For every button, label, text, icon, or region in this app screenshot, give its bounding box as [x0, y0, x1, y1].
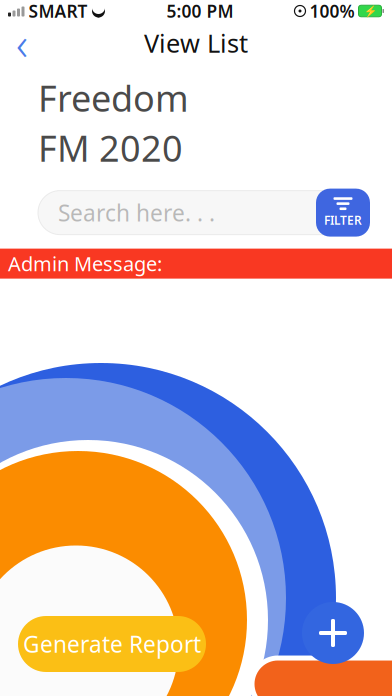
staticText: ‹ [16, 13, 28, 73]
staticText: 5:00 PM [166, 0, 233, 22]
staticText: Search here. . . [58, 198, 215, 228]
staticText: FM 2020 [38, 124, 183, 172]
staticText: ⚡ [363, 5, 376, 17]
button[interactable]: Add [302, 602, 364, 664]
staticText: View List [144, 26, 248, 60]
button[interactable]: Generate Report [18, 616, 206, 672]
staticText: 100% [309, 0, 354, 22]
staticText: SMART [28, 0, 87, 22]
staticText: Admin Message: [8, 250, 162, 277]
staticText: Generate Report [23, 629, 201, 659]
staticText: FILTER [324, 212, 362, 228]
button[interactable]: FILTER [316, 189, 370, 237]
button[interactable]: Back [0, 23, 44, 63]
staticText: Freedom [38, 74, 189, 122]
